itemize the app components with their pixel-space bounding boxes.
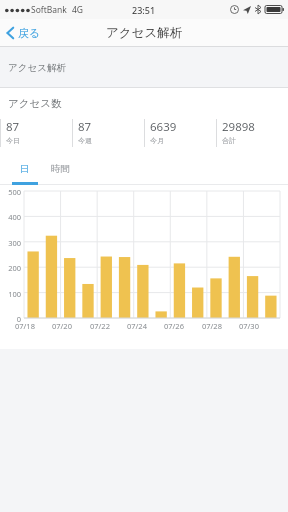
staticText: 23:51 — [132, 4, 156, 16]
button[interactable]: 87 — [0, 119, 72, 147]
staticText: 07/18 — [15, 321, 35, 331]
staticText: 戻る — [18, 26, 41, 40]
staticText: 400 — [0, 212, 21, 222]
button[interactable]: 時間 — [43, 158, 77, 180]
staticText: 87 — [78, 119, 92, 135]
staticText: 29898 — [222, 119, 255, 135]
staticText: 200 — [0, 263, 21, 273]
staticText: 100 — [0, 289, 21, 299]
staticText: 07/26 — [164, 321, 184, 331]
button[interactable]: 87 — [72, 119, 144, 147]
staticText: 今月 — [150, 136, 164, 145]
staticText: 時間 — [51, 163, 70, 175]
button[interactable]: 日 — [12, 158, 38, 180]
staticText: 07/24 — [127, 321, 147, 331]
staticText: 87 — [6, 119, 20, 135]
staticText: アクセス解析 — [106, 25, 183, 41]
button[interactable]: 29898 — [216, 119, 288, 147]
staticText: 合計 — [222, 136, 236, 145]
staticText: 07/28 — [202, 321, 222, 331]
staticText: 0 — [0, 314, 21, 324]
staticText: 07/20 — [52, 321, 72, 331]
staticText: 07/30 — [239, 321, 259, 331]
button[interactable]: 6639 — [144, 119, 216, 147]
staticText: SoftBank — [31, 4, 67, 16]
staticText: 今週 — [78, 136, 92, 145]
button[interactable]: 戻る — [0, 21, 51, 45]
staticText: アクセス数 — [8, 97, 62, 110]
staticText: 500 — [0, 187, 21, 197]
staticText: 今日 — [6, 136, 20, 145]
staticText: 6639 — [150, 119, 177, 135]
staticText: 07/22 — [90, 321, 110, 331]
staticText: アクセス解析 — [8, 62, 66, 74]
staticText: 4G — [72, 4, 84, 16]
staticText: 300 — [0, 238, 21, 248]
staticText: 日 — [20, 163, 30, 175]
